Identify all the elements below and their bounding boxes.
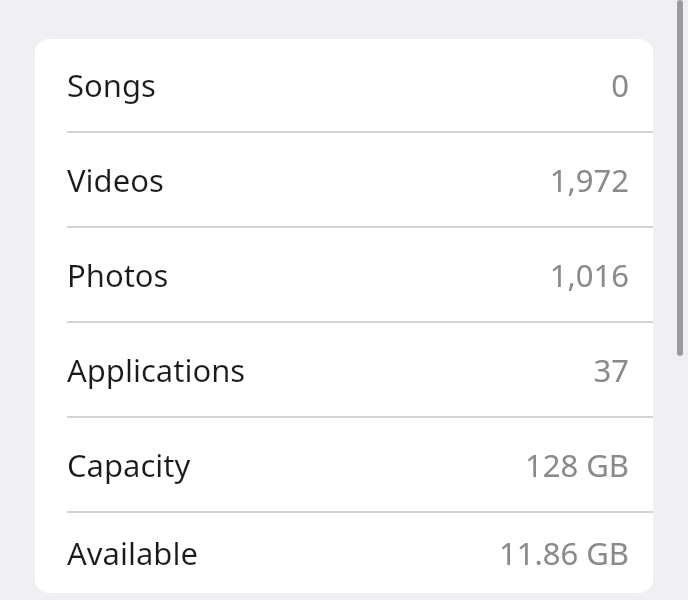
button[interactable]: Available: [35, 513, 653, 593]
button[interactable]: Photos: [35, 228, 653, 321]
other: Scroll position: [677, 0, 683, 356]
button[interactable]: Videos: [35, 133, 653, 226]
button[interactable]: Songs: [35, 39, 653, 131]
staticText: Photos: [67, 254, 169, 296]
staticText: Applications: [67, 349, 246, 391]
button[interactable]: Applications: [35, 323, 653, 416]
staticText: Capacity: [67, 444, 191, 486]
staticText: 11.86 GB: [498, 532, 629, 574]
staticText: 37: [593, 349, 629, 391]
staticText: Songs: [67, 64, 156, 106]
staticText: 1,972: [549, 159, 629, 201]
staticText: 0: [611, 64, 629, 106]
staticText: 128 GB: [525, 444, 629, 486]
staticText: Available: [67, 532, 198, 574]
staticText: 1,016: [549, 254, 629, 296]
button[interactable]: Capacity: [35, 418, 653, 511]
staticText: Videos: [67, 159, 164, 201]
